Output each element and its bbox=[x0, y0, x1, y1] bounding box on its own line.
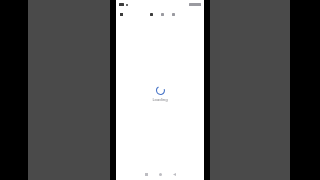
button[interactable]: Menu bbox=[118, 11, 124, 17]
button[interactable]: Action one bbox=[148, 11, 154, 17]
button[interactable]: Recents bbox=[139, 169, 153, 179]
button[interactable]: Action two bbox=[159, 11, 165, 17]
button[interactable]: Back bbox=[167, 169, 181, 179]
button[interactable]: Home bbox=[153, 169, 167, 179]
staticText: Loading bbox=[152, 97, 168, 102]
button[interactable]: Action three bbox=[170, 11, 176, 17]
